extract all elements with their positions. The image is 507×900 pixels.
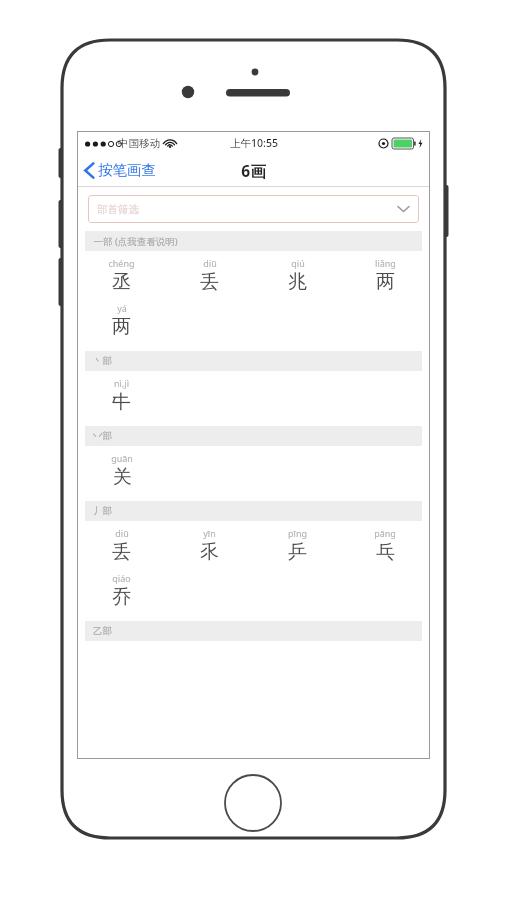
staticText: yīn: [203, 527, 216, 539]
staticText: 两: [376, 270, 395, 294]
staticText: 上午10:55: [230, 136, 278, 150]
button[interactable]: 部首筛选: [88, 195, 419, 223]
staticText: pāng: [374, 527, 396, 539]
staticText: 丿部: [93, 505, 112, 517]
button[interactable]: pīng: [253, 527, 341, 564]
staticText: 乔: [112, 585, 131, 609]
staticText: qiáo: [112, 572, 131, 584]
button[interactable]: qiú: [253, 257, 341, 294]
staticText: 乑: [200, 540, 219, 564]
staticText: 乓: [376, 540, 395, 564]
button[interactable]: pāng: [341, 527, 429, 564]
staticText: 乒: [288, 540, 307, 564]
staticText: liǎng: [375, 257, 396, 269]
staticText: nì,jì: [114, 377, 129, 389]
staticText: 乙部: [93, 625, 112, 637]
staticText: 兆: [288, 270, 307, 294]
button[interactable]: 丶部: [85, 351, 422, 371]
button[interactable]: 丿部: [85, 501, 422, 521]
staticText: 丞: [112, 270, 131, 294]
button[interactable]: yá: [78, 302, 165, 339]
button[interactable]: guān: [78, 452, 165, 489]
staticText: 关: [113, 465, 132, 489]
staticText: 按笔画查: [98, 161, 156, 179]
staticText: 6画: [241, 160, 266, 181]
staticText: yá: [117, 302, 127, 314]
staticText: 两: [112, 315, 131, 339]
staticText: 丶部: [93, 355, 112, 367]
button[interactable]: 按笔画查: [78, 157, 164, 183]
staticText: 丢: [200, 270, 219, 294]
staticText: 丢: [112, 540, 131, 564]
staticText: diū: [203, 257, 217, 269]
staticText: diū: [115, 527, 129, 539]
staticText: 中国移动: [118, 137, 160, 150]
button[interactable]: chéng: [78, 257, 165, 294]
staticText: guān: [111, 452, 133, 464]
button[interactable]: diū: [165, 257, 253, 294]
staticText: qiú: [291, 257, 305, 269]
button[interactable]: diū: [78, 527, 165, 564]
button[interactable]: 丷部: [85, 426, 422, 446]
button[interactable]: nì,jì: [78, 377, 165, 414]
staticText: 部首筛选: [97, 203, 139, 216]
staticText: pīng: [288, 527, 307, 539]
button[interactable]: qiáo: [78, 572, 165, 609]
staticText: chéng: [108, 257, 135, 269]
staticText: 一部 (点我查看说明): [93, 235, 178, 248]
button[interactable]: 一部 (点我查看说明): [85, 231, 422, 251]
staticText: 㐄: [112, 390, 131, 414]
button[interactable]: 乙部: [85, 621, 422, 641]
button[interactable]: yīn: [165, 527, 253, 564]
staticText: 丷部: [93, 430, 112, 442]
button[interactable]: liǎng: [341, 257, 429, 294]
